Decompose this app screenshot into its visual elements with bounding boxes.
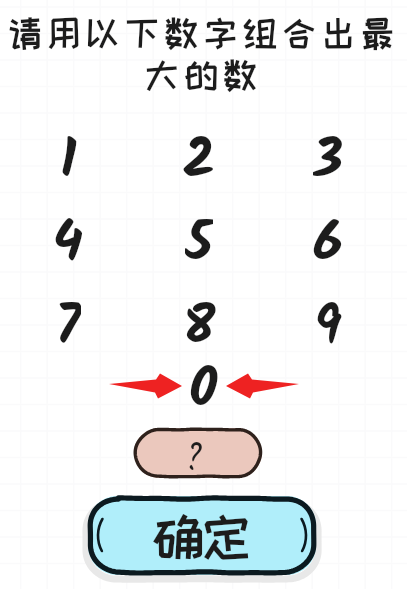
- staticText: 1: [60, 119, 77, 181]
- button[interactable]: 5: [171, 202, 227, 264]
- button[interactable]: 6: [300, 202, 356, 264]
- button[interactable]: 8: [171, 285, 227, 347]
- button[interactable]: 2: [171, 119, 227, 181]
- staticText: 确定: [153, 509, 251, 562]
- button[interactable]: 3: [300, 119, 356, 181]
- button[interactable]: 4: [40, 202, 96, 264]
- staticText: 2: [183, 119, 216, 181]
- button[interactable]: 9: [300, 285, 356, 347]
- staticText: ?: [185, 434, 203, 478]
- button[interactable]: 0: [175, 348, 231, 410]
- staticText: 请用以下数字组合出最大的数: [6, 14, 401, 93]
- staticText: 0: [189, 348, 218, 410]
- button[interactable]: 7: [40, 285, 96, 347]
- staticText: 8: [183, 285, 216, 347]
- staticText: 7: [55, 285, 81, 347]
- staticText: 3: [313, 119, 344, 181]
- button[interactable]: 1: [40, 119, 96, 181]
- staticText: 9: [314, 285, 342, 347]
- button[interactable]: Hint: [134, 428, 262, 478]
- button[interactable]: 确定: [88, 496, 316, 575]
- staticText: 5: [185, 202, 213, 264]
- staticText: 6: [313, 202, 343, 264]
- staticText: 4: [53, 202, 83, 264]
